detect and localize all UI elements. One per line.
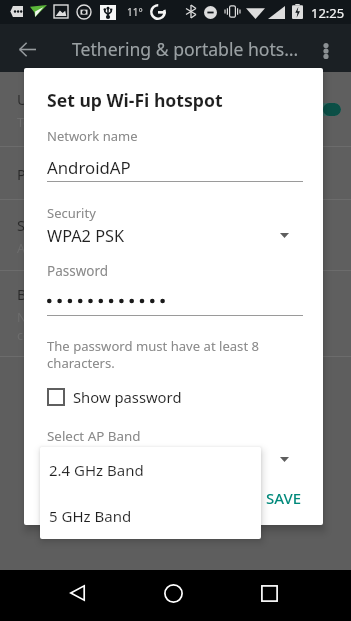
staticText: AndroidAP xyxy=(47,156,131,179)
staticText: Portable Wi-Fi hotspot xyxy=(17,164,169,184)
button[interactable]: Portable Wi-Fi hotspot xyxy=(0,147,351,200)
staticText: WPA2 PSK xyxy=(47,225,125,247)
button[interactable]: Show password xyxy=(47,387,182,407)
button[interactable]: Home xyxy=(149,569,197,617)
staticText: Tethering & portable hots… xyxy=(72,37,299,61)
staticText: The password must have at least 8 charac… xyxy=(47,337,268,372)
button[interactable]: Navigate up xyxy=(3,25,51,73)
button[interactable]: More options xyxy=(304,29,348,73)
staticText: Set up Wi-Fi hotspot xyxy=(17,215,154,235)
staticText: Tethered xyxy=(17,114,70,131)
button[interactable]: 2.4 GHz Band xyxy=(40,447,261,493)
button[interactable]: USB tethering xyxy=(0,72,351,147)
staticText: 11° xyxy=(127,5,143,19)
button[interactable]: SAVE xyxy=(254,476,314,520)
button[interactable]: Bluetooth tethering xyxy=(0,271,351,357)
staticText: Bluetooth tethering xyxy=(17,284,152,304)
staticText: Security xyxy=(47,204,96,222)
button[interactable]: Recent apps xyxy=(245,569,293,617)
staticText: Network name xyxy=(47,127,138,145)
staticText: Select AP Band xyxy=(47,427,141,445)
staticText: AndroidAP WPA2 PSK portable Wi-Fi hotspo… xyxy=(17,240,276,257)
staticText: 2.4 GHz Band xyxy=(49,460,144,480)
button[interactable]: Set up Wi-Fi hotspot xyxy=(0,200,351,271)
staticText: Password xyxy=(47,262,109,280)
staticText: 12:25 xyxy=(311,4,345,22)
staticText: Set up Wi-Fi hotspot xyxy=(47,88,223,112)
button[interactable]: Back xyxy=(53,569,101,617)
button[interactable]: 5 GHz Band xyxy=(40,493,261,539)
staticText: 5 GHz Band xyxy=(49,506,132,526)
staticText: Show password xyxy=(73,387,182,407)
staticText: SAVE xyxy=(266,488,302,508)
staticText: USB tethering xyxy=(17,89,113,109)
staticText: Not sharing this phone's Internet connec… xyxy=(17,309,212,344)
